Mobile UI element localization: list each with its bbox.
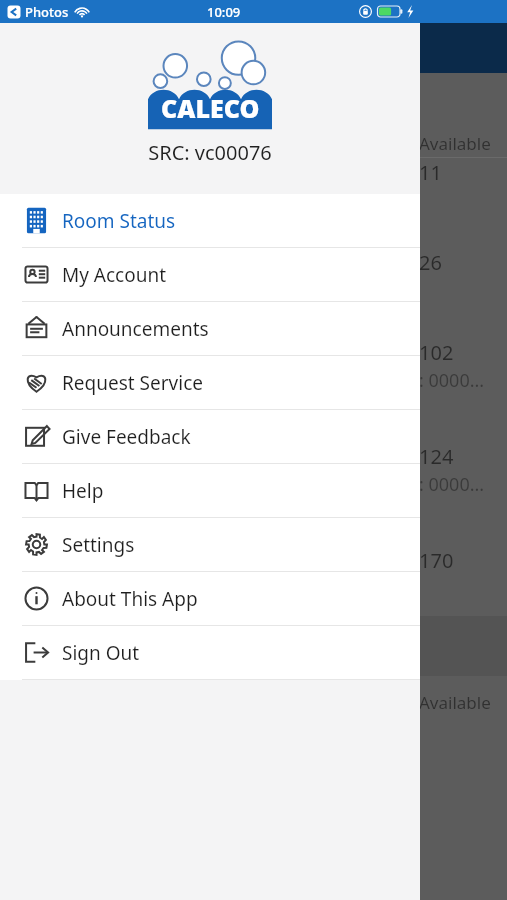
button[interactable]: Request Service [0,356,420,409]
staticText: My Account [62,262,167,288]
staticText: Help [62,478,104,504]
button[interactable]: My Account [0,248,420,301]
staticText: Photos [25,3,69,21]
staticText: SRC: vc00076 [148,139,272,166]
staticText: : 0000... [419,472,485,497]
staticText: 26 [419,249,442,276]
staticText: Room Status [62,208,176,234]
staticText: Give Feedback [62,424,191,450]
staticText: CALECO [161,91,260,125]
button[interactable]: Sign Out [0,626,420,679]
button[interactable]: About This App [0,572,420,625]
staticText: Settings [62,532,135,558]
staticText: : 0000... [419,368,485,393]
staticText: Sign Out [62,640,140,666]
button[interactable]: Settings [0,518,420,571]
staticText: Available [419,691,491,714]
staticText: 124 [419,443,454,470]
button[interactable]: Help [0,464,420,517]
staticText: Announcements [62,316,209,342]
button[interactable]: Announcements [0,302,420,355]
staticText: About This App [62,586,198,612]
staticText: Request Service [62,370,203,396]
staticText: 170 [419,547,454,574]
staticText: Available [419,132,491,155]
staticText: 102 [419,339,454,366]
button[interactable]: Room Status [0,194,420,247]
staticText: 10:09 [207,3,241,21]
button[interactable]: Give Feedback [0,410,420,463]
staticText: 11 [419,159,442,186]
